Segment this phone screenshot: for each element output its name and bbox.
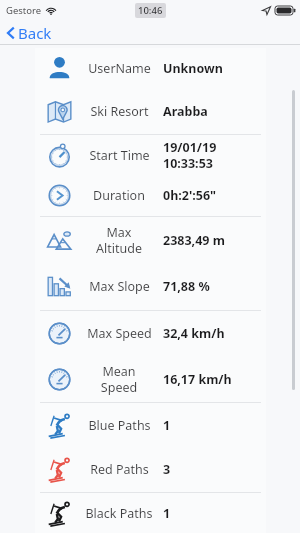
staticText: Start Time bbox=[89, 147, 150, 164]
staticText: Max Speed bbox=[87, 325, 152, 342]
staticText: Unknown bbox=[163, 60, 223, 77]
staticText: 71,88 % bbox=[163, 278, 210, 295]
button[interactable]: Max Speed bbox=[35, 311, 266, 356]
staticText: Arabba bbox=[163, 103, 208, 120]
staticText: Red Paths bbox=[90, 461, 149, 478]
button[interactable]: Blue Paths bbox=[35, 403, 266, 447]
staticText: 3 bbox=[163, 461, 171, 478]
staticText: Ski Resort bbox=[90, 103, 149, 120]
staticText: Blue Paths bbox=[88, 417, 151, 434]
staticText: Mean Speed bbox=[83, 363, 155, 395]
button[interactable]: Start Time bbox=[35, 135, 266, 175]
button[interactable]: Black Paths bbox=[35, 493, 266, 533]
staticText: 19/01/19 10:33:53 bbox=[163, 139, 217, 171]
button[interactable]: UserName bbox=[35, 48, 266, 88]
staticText: 16,17 km/h bbox=[163, 371, 232, 388]
staticText: Max Slope bbox=[89, 278, 150, 295]
button[interactable]: Duration bbox=[35, 175, 266, 216]
staticText: 32,4 km/h bbox=[163, 325, 225, 342]
staticText: 0h:2':56" bbox=[163, 187, 217, 204]
button[interactable]: Red Paths bbox=[35, 447, 266, 492]
staticText: Duration bbox=[93, 187, 145, 204]
button[interactable]: Ski Resort bbox=[35, 88, 266, 134]
button[interactable]: Max Slope bbox=[35, 263, 266, 310]
staticText: Back bbox=[18, 23, 52, 42]
staticText: Gestore bbox=[6, 4, 42, 17]
button[interactable]: Max Altitude bbox=[35, 217, 266, 263]
staticText: 1 bbox=[163, 417, 171, 434]
staticText: Max Altitude bbox=[83, 224, 155, 256]
staticText: Black Paths bbox=[85, 505, 153, 522]
button[interactable]: Mean Speed bbox=[35, 356, 266, 402]
staticText: 1 bbox=[163, 505, 171, 522]
staticText: UserName bbox=[88, 60, 151, 77]
staticText: 10:46 bbox=[138, 4, 163, 17]
button[interactable]: Back bbox=[0, 20, 60, 45]
staticText: 2383,49 m bbox=[163, 232, 225, 249]
